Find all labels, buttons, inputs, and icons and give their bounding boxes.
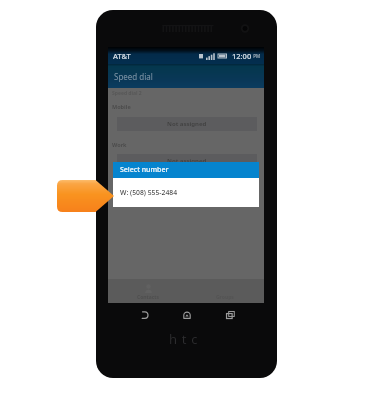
staticText: Not assigned [167,120,207,128]
staticText: AT&T [113,51,131,61]
button[interactable]: Back [130,301,158,329]
button[interactable]: Home [173,301,201,329]
staticText: Speed dial 2 [112,90,142,97]
staticText: W: (508) 555-2484 [120,188,178,197]
button[interactable]: W: (508) 555-2484 [113,178,259,207]
staticText: Not assigned [167,157,207,165]
staticText: PM [252,53,261,59]
button[interactable]: Not assigned [117,154,257,168]
staticText: Speed dial [114,71,153,82]
staticText: Work [112,141,127,148]
staticText: 12:00 [232,51,252,61]
staticText: htc [169,330,203,348]
button[interactable]: Select number [113,162,259,178]
staticText: Select number [120,165,169,175]
staticText: Contacts [137,294,160,301]
staticText: Mobile [112,103,131,110]
button[interactable]: Recent apps [216,301,244,329]
button[interactable]: Not assigned [117,117,257,131]
